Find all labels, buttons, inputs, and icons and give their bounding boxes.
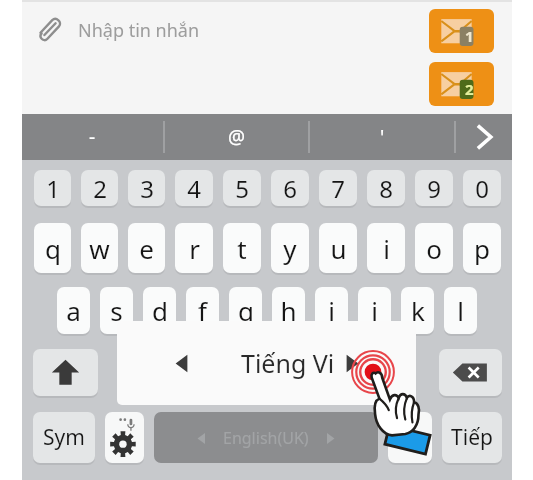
staticText: j [371, 293, 378, 328]
staticText: w [89, 231, 110, 266]
button[interactable]: 7 [319, 170, 357, 206]
staticText: g [238, 293, 254, 328]
button[interactable]: i [315, 287, 348, 334]
staticText: u [330, 231, 347, 266]
button[interactable]: 8 [367, 170, 405, 206]
button[interactable]: o [415, 223, 453, 273]
button[interactable]: Previous language [161, 348, 201, 378]
button[interactable]: t [223, 223, 261, 273]
staticText: 2 [93, 172, 107, 205]
button[interactable]: d [143, 287, 176, 334]
staticText: s [110, 293, 123, 328]
staticText: e [139, 231, 154, 266]
staticText: Tiếp [451, 423, 493, 452]
button[interactable]: Send with SIM 1 [429, 9, 494, 53]
staticText: f [198, 293, 207, 328]
button[interactable]: 5 [223, 170, 261, 206]
button[interactable]: k [401, 287, 434, 334]
staticText: 8 [379, 172, 393, 205]
staticText: r [189, 231, 200, 266]
button[interactable]: 6 [271, 170, 309, 206]
staticText: d [152, 293, 168, 328]
button[interactable]: g [229, 287, 262, 334]
button[interactable]: 0 [463, 170, 501, 206]
button[interactable]: English(UK) [154, 412, 378, 463]
staticText: ' [380, 124, 385, 150]
staticText: 4 [187, 172, 201, 205]
button[interactable]: 3 [128, 170, 165, 206]
button[interactable]: More suggestions [456, 114, 512, 160]
button[interactable]: Next language [333, 348, 371, 378]
staticText: i [383, 231, 390, 266]
button[interactable]: Attach [22, 1, 78, 59]
button[interactable]: Delete [439, 349, 502, 396]
button[interactable]: s [100, 287, 133, 334]
staticText: 2 [465, 79, 474, 99]
button[interactable]: i [367, 223, 405, 273]
button[interactable]: q [34, 223, 71, 273]
button[interactable]: Tiếp [442, 412, 502, 463]
button[interactable]: f [186, 287, 219, 334]
staticText: 6 [283, 172, 297, 205]
button[interactable]: y [271, 223, 309, 273]
button[interactable]: Shift [33, 349, 98, 396]
staticText: 1 [465, 26, 474, 46]
button[interactable]: a [57, 287, 90, 334]
button[interactable]: 4 [175, 170, 213, 206]
staticText: 9 [427, 172, 441, 205]
button[interactable]: r [175, 223, 213, 273]
staticText: 3 [140, 172, 154, 205]
button[interactable]: e [128, 223, 165, 273]
button[interactable]: h [272, 287, 305, 334]
staticText: h [280, 293, 297, 328]
button[interactable]: @ [165, 114, 308, 160]
staticText: k [411, 293, 425, 328]
staticText: @ [228, 124, 246, 150]
button[interactable]: l [444, 287, 477, 334]
button[interactable]: Sym [33, 412, 95, 463]
button[interactable]: 9 [415, 170, 453, 206]
staticText: 7 [331, 172, 345, 205]
button[interactable]: Previous language [117, 321, 416, 405]
button[interactable]: - [22, 114, 163, 160]
button[interactable]: ' [310, 114, 454, 160]
staticText: Tiếng Vi [241, 346, 335, 380]
staticText: Nhập tin nhắn [78, 18, 200, 43]
staticText: p [474, 231, 490, 266]
staticText: a [66, 293, 81, 328]
button[interactable]: Settings [105, 412, 144, 463]
button[interactable]: 2 [81, 170, 118, 206]
button[interactable]: 1 [34, 170, 71, 206]
staticText: 1 [46, 172, 60, 205]
staticText: t [237, 231, 247, 266]
staticText: 0 [475, 172, 489, 205]
staticText: o [426, 231, 442, 266]
button[interactable]: u [319, 223, 357, 273]
staticText: English(UK) [223, 427, 309, 449]
staticText: y [283, 231, 297, 266]
button[interactable]: Send with SIM 2 [429, 62, 494, 106]
staticText: - [89, 124, 96, 150]
button[interactable]: Emoji keyboard [388, 412, 432, 463]
staticText: 5 [235, 172, 249, 205]
staticText: Sym [43, 423, 85, 452]
button[interactable]: w [81, 223, 118, 273]
staticText: l [457, 293, 464, 328]
staticText: q [45, 231, 61, 266]
button[interactable]: j [358, 287, 391, 334]
button[interactable]: p [463, 223, 501, 273]
staticText: i [328, 293, 335, 328]
